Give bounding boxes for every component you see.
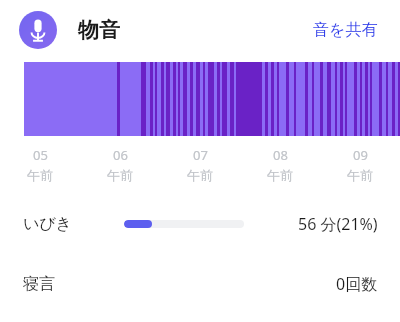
button[interactable]: いびき bbox=[0, 203, 400, 245]
staticText: 午前 bbox=[107, 167, 133, 183]
staticText: 物音 bbox=[78, 17, 120, 43]
button[interactable]: 音を共有 bbox=[307, 14, 384, 46]
button[interactable]: 寝言 bbox=[0, 263, 400, 305]
staticText: 07 bbox=[193, 146, 208, 164]
staticText: 寝言 bbox=[23, 274, 55, 294]
staticText: 午前 bbox=[187, 167, 213, 183]
button[interactable]: Microphone bbox=[19, 11, 57, 49]
staticText: 09 bbox=[353, 146, 368, 164]
staticText: 午前 bbox=[347, 167, 373, 183]
staticText: 音を共有 bbox=[313, 20, 378, 40]
staticText: 56 分(21%) bbox=[298, 213, 378, 235]
staticText: 午前 bbox=[27, 167, 53, 183]
staticText: 午前 bbox=[267, 167, 293, 183]
staticText: 08 bbox=[273, 146, 288, 164]
staticText: 0回数 bbox=[336, 273, 378, 295]
staticText: 05 bbox=[33, 146, 48, 164]
staticText: いびき bbox=[23, 214, 73, 234]
staticText: 06 bbox=[113, 146, 128, 164]
